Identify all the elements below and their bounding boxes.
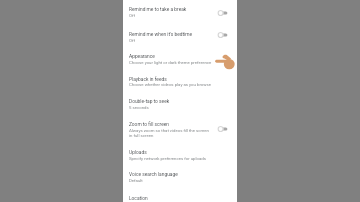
staticText: Specify network preferences for uploads [129,156,239,161]
staticText: Off [129,13,239,18]
staticText: Remind me to take a break [129,7,233,13]
button[interactable] [123,45,237,68]
staticText: Remind me when it's bedtime [129,32,233,38]
button[interactable] [123,142,237,165]
button[interactable] [123,21,237,45]
staticText: Voice search language [129,172,233,178]
staticText: Appearance [129,54,233,60]
button[interactable]: Toggle [217,125,231,133]
button[interactable]: Toggle [217,9,231,17]
staticText: Choose whether videos play as you browse [129,82,239,87]
button[interactable]: Toggle [217,31,231,39]
staticText: Zoom to fill screen [129,122,233,128]
staticText: Double-tap to seek [129,99,233,105]
staticText: Default [129,178,239,183]
staticText: Choose your light or dark theme preferen… [129,60,239,65]
button[interactable] [123,0,237,21]
staticText: Off [129,38,239,43]
button[interactable] [123,68,237,90]
button[interactable] [123,90,237,112]
button[interactable] [123,188,237,202]
staticText: Playback in feeds [129,77,233,83]
staticText: Uploads [129,150,233,156]
staticText: Always zoom so that videos fill the scre… [129,128,239,138]
staticText: Location [129,196,233,202]
button[interactable] [123,112,237,142]
staticText: 5 seconds [129,105,239,110]
button[interactable] [123,165,237,188]
